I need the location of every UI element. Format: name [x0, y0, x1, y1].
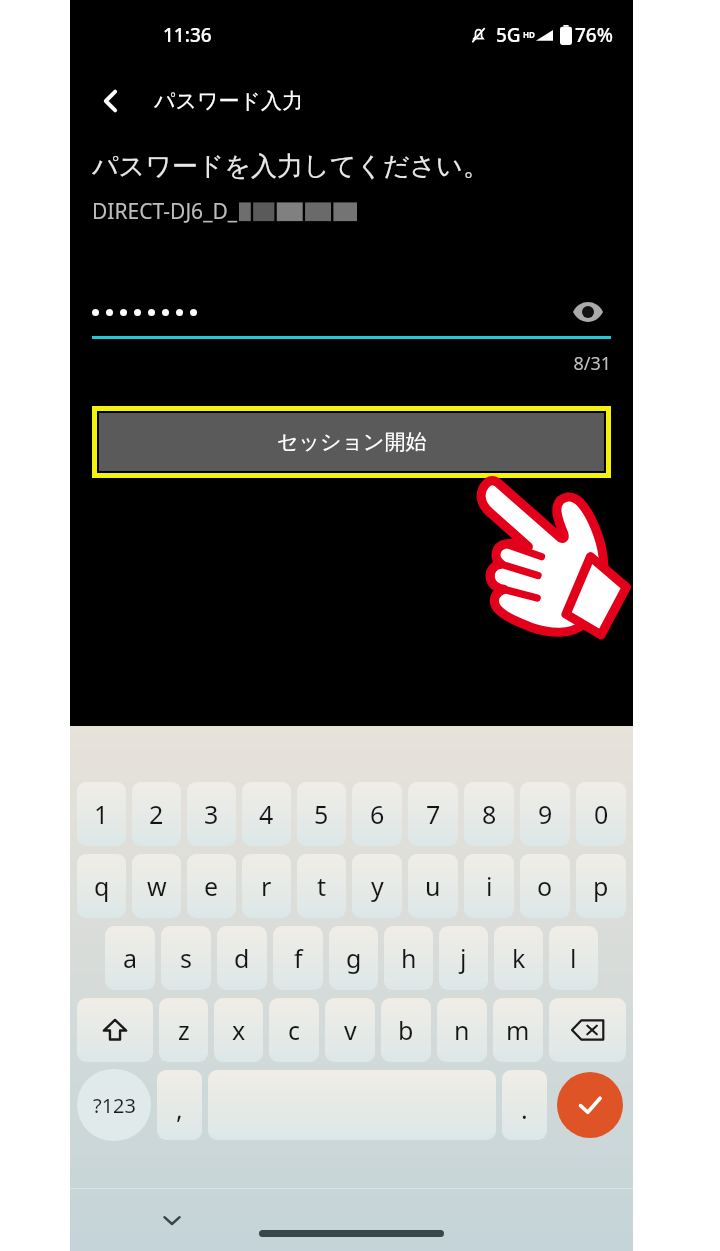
button[interactable]: 3 — [187, 782, 236, 846]
staticText: c — [288, 1013, 301, 1047]
button[interactable]: f — [273, 926, 323, 990]
button[interactable]: i — [464, 854, 514, 918]
button[interactable] — [77, 998, 153, 1062]
button[interactable]: 5 — [297, 782, 346, 846]
button[interactable]: b — [381, 998, 431, 1062]
button[interactable]: a — [105, 926, 155, 990]
button[interactable]: s — [161, 926, 211, 990]
staticText: f — [294, 941, 303, 975]
button[interactable]: w — [132, 854, 181, 918]
button[interactable]: 8 — [464, 782, 514, 846]
button[interactable] — [549, 998, 626, 1062]
button[interactable]: 4 — [242, 782, 291, 846]
button[interactable]: q — [77, 854, 126, 918]
button[interactable]: Done — [557, 1072, 623, 1138]
staticText: 8/31 — [92, 351, 611, 376]
staticText: x — [232, 1013, 246, 1047]
button[interactable]: 0 — [576, 782, 626, 846]
button[interactable]: l — [549, 926, 598, 990]
staticText: 1 — [94, 797, 109, 831]
staticText: パスワードを入力してください。 — [92, 150, 489, 183]
staticText: パスワード入力 — [154, 88, 303, 114]
staticText: 8 — [482, 797, 497, 831]
staticText: 11:36 — [163, 22, 212, 48]
staticText: DIRECT-DJ6_D_ — [92, 197, 238, 226]
staticText: q — [94, 869, 110, 903]
staticText: b — [398, 1013, 414, 1047]
button[interactable] — [208, 1070, 496, 1140]
staticText: e — [204, 869, 219, 903]
button[interactable]: 6 — [352, 782, 402, 846]
staticText: 5G — [496, 22, 521, 48]
staticText: ?123 — [93, 1092, 136, 1119]
staticText: 76% — [575, 22, 613, 48]
staticText: z — [178, 1013, 190, 1047]
staticText: o — [537, 869, 553, 903]
staticText: t — [317, 869, 327, 903]
staticText: k — [512, 941, 526, 975]
button[interactable]: t — [297, 854, 346, 918]
button[interactable]: h — [384, 926, 433, 990]
button[interactable]: y — [352, 854, 402, 918]
button[interactable]: m — [493, 998, 543, 1062]
staticText: . — [521, 1092, 528, 1126]
button[interactable]: c — [269, 998, 319, 1062]
staticText: i — [486, 869, 493, 903]
staticText: 5 — [314, 797, 329, 831]
button[interactable]: k — [494, 926, 543, 990]
button[interactable]: o — [520, 854, 570, 918]
button[interactable]: Show password — [565, 289, 611, 335]
button[interactable]: e — [187, 854, 236, 918]
staticText: p — [593, 869, 609, 903]
button[interactable]: 2 — [132, 782, 181, 846]
staticText: , — [176, 1092, 183, 1126]
staticText: d — [234, 941, 250, 975]
button[interactable]: x — [214, 998, 263, 1062]
staticText: s — [180, 941, 192, 975]
button[interactable]: . — [502, 1070, 547, 1140]
button[interactable]: Hide keyboard — [150, 1198, 194, 1242]
staticText: u — [425, 869, 441, 903]
button[interactable]: Back — [84, 74, 138, 128]
button[interactable]: , — [157, 1070, 202, 1140]
staticText: セッション開始 — [277, 429, 427, 455]
button[interactable]: v — [325, 998, 375, 1062]
staticText: 7 — [426, 797, 441, 831]
staticText: w — [147, 869, 167, 903]
button[interactable]: 1 — [77, 782, 126, 846]
staticText: 2 — [149, 797, 164, 831]
staticText: 3 — [204, 797, 219, 831]
staticText: r — [261, 869, 272, 903]
staticText: j — [460, 941, 467, 975]
button[interactable]: p — [576, 854, 626, 918]
staticText: m — [506, 1013, 530, 1047]
button[interactable]: d — [217, 926, 267, 990]
staticText: 6 — [370, 797, 385, 831]
button[interactable]: 9 — [520, 782, 570, 846]
button[interactable]: u — [408, 854, 458, 918]
staticText: 0 — [594, 797, 609, 831]
button[interactable]: ?123 — [77, 1069, 151, 1141]
button[interactable]: n — [437, 998, 487, 1062]
staticText: 4 — [259, 797, 274, 831]
staticText: g — [346, 941, 362, 975]
staticText: v — [344, 1013, 357, 1047]
staticText: HD — [523, 29, 535, 40]
staticText: 9 — [538, 797, 553, 831]
staticText: l — [570, 941, 577, 975]
staticText: h — [401, 941, 417, 975]
button[interactable]: r — [242, 854, 291, 918]
staticText: y — [371, 869, 384, 903]
button[interactable]: g — [329, 926, 378, 990]
staticText: a — [123, 941, 138, 975]
button[interactable]: セッション開始 — [99, 413, 604, 471]
button[interactable]: 7 — [408, 782, 458, 846]
button[interactable]: j — [439, 926, 488, 990]
staticText: n — [454, 1013, 470, 1047]
button[interactable]: z — [159, 998, 208, 1062]
